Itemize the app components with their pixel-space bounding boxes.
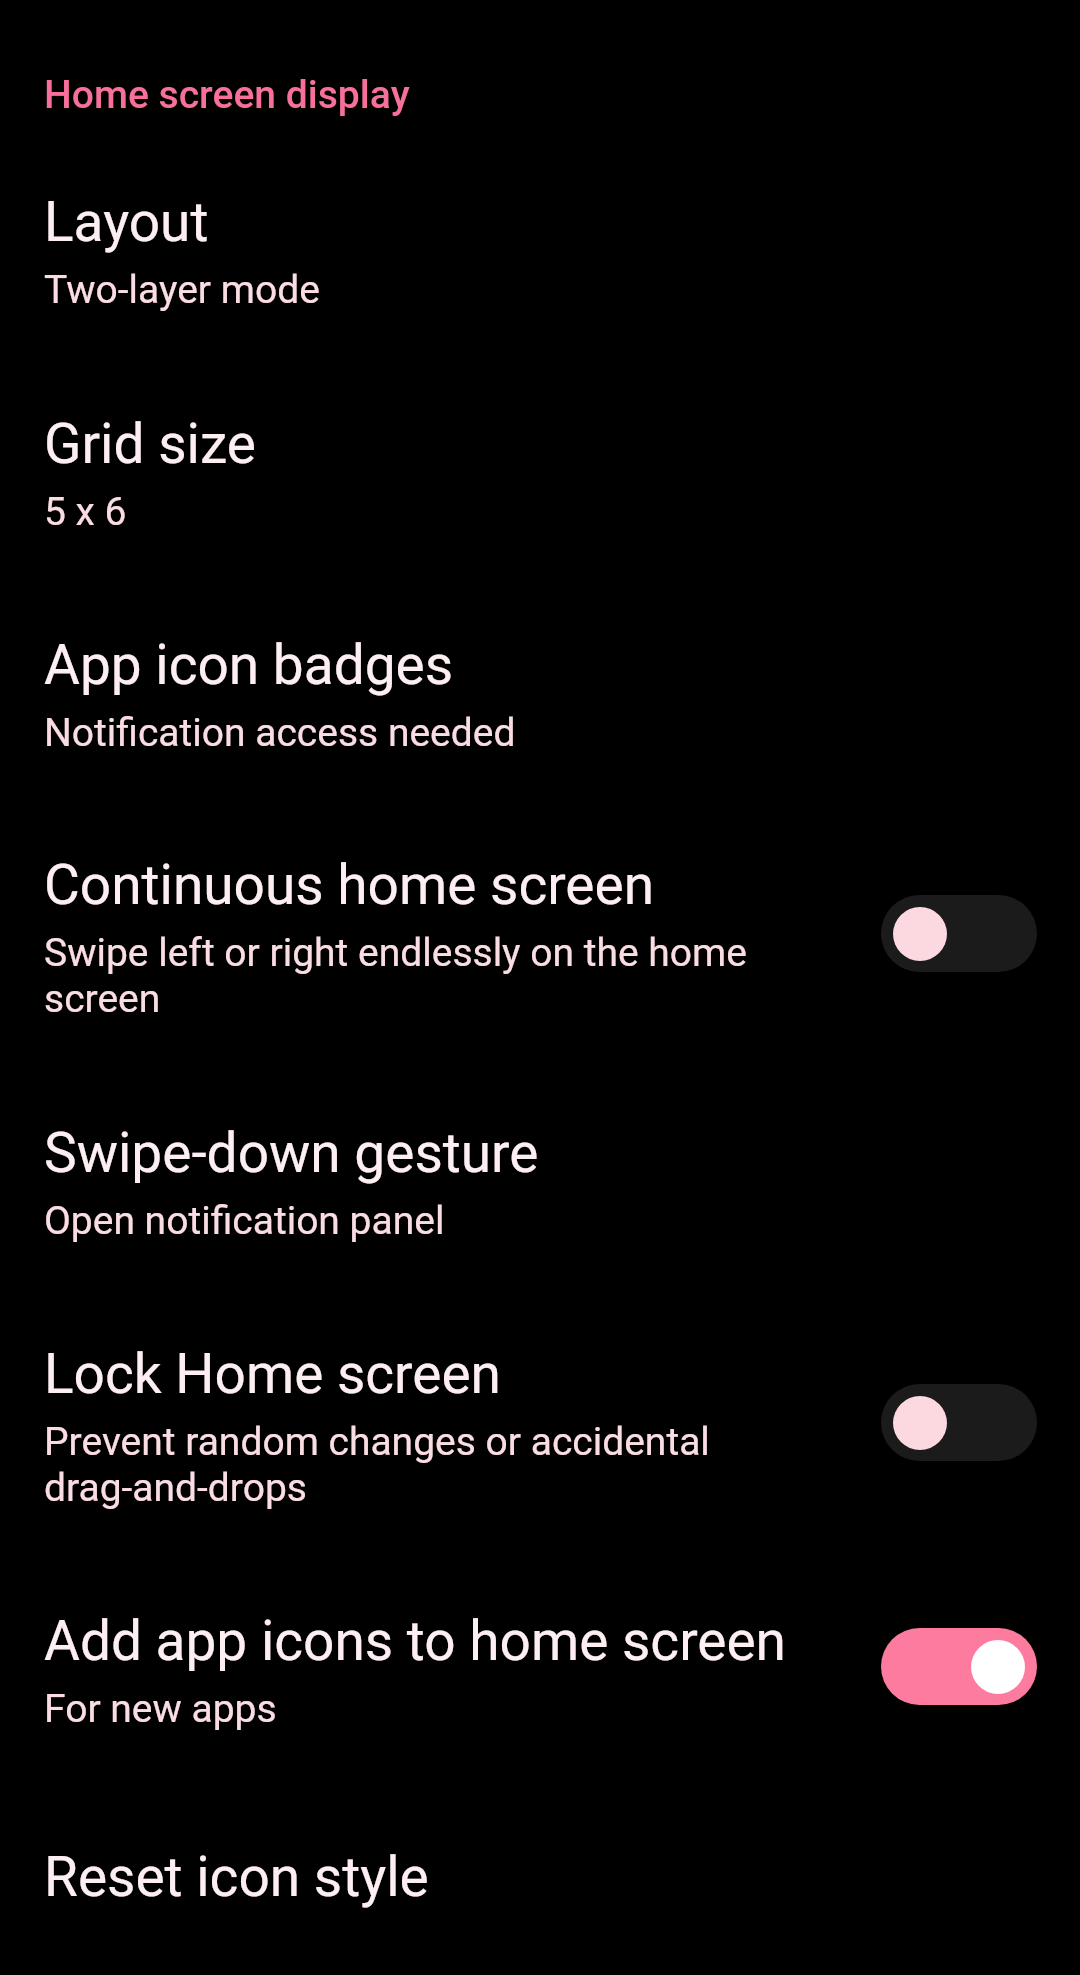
staticText: 5 x 6: [44, 489, 944, 535]
staticText: Prevent random changes or accidental dra…: [44, 1419, 774, 1511]
staticText: App icon badges: [44, 633, 454, 697]
staticText: Reset icon style: [44, 1845, 429, 1909]
button[interactable]: Continuous home screen, switch off: [881, 895, 1037, 972]
button[interactable]: App icon badges: [0, 633, 1080, 756]
button[interactable]: Continuous home screen: [0, 853, 1080, 1022]
staticText: Layout: [44, 190, 209, 254]
staticText: Notification access needed: [44, 710, 944, 756]
staticText: Grid size: [44, 412, 256, 476]
staticText: Lock Home screen: [44, 1342, 501, 1406]
button[interactable]: Grid size: [0, 412, 1080, 535]
staticText: Two-layer mode: [44, 267, 944, 313]
button[interactable]: Swipe-down gesture: [0, 1121, 1080, 1244]
staticText: For new apps: [44, 1686, 944, 1732]
staticText: Open notification panel: [44, 1198, 944, 1244]
staticText: Swipe-down gesture: [44, 1121, 539, 1185]
button[interactable]: Lock Home screen, switch off: [881, 1384, 1037, 1461]
button[interactable]: Reset icon style: [0, 1845, 1080, 1909]
staticText: Add app icons to home screen: [44, 1609, 786, 1673]
staticText: Home screen display: [44, 72, 410, 118]
button[interactable]: Add app icons to home screen, switch on: [881, 1628, 1037, 1705]
staticText: Swipe left or right endlessly on the hom…: [44, 930, 804, 1022]
button[interactable]: Add app icons to home screen: [0, 1609, 1080, 1732]
staticText: Continuous home screen: [44, 853, 655, 917]
button[interactable]: Lock Home screen: [0, 1342, 1080, 1511]
button[interactable]: Layout: [0, 190, 1080, 313]
